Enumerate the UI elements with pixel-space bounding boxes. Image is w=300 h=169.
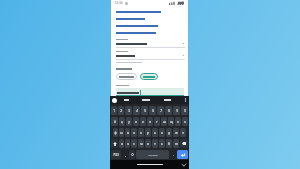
staticText: ч bbox=[127, 142, 129, 146]
button[interactable]: ш bbox=[161, 117, 167, 126]
staticText: и bbox=[147, 142, 149, 146]
button[interactable]: ю bbox=[173, 139, 179, 148]
button[interactable]: р bbox=[145, 128, 151, 137]
staticText: у bbox=[128, 120, 130, 124]
button[interactable] bbox=[111, 22, 188, 29]
button[interactable] bbox=[123, 97, 129, 103]
button[interactable]: 9 bbox=[173, 106, 180, 115]
button[interactable]: э bbox=[180, 128, 186, 137]
staticText: ы bbox=[120, 131, 123, 135]
button[interactable]: с bbox=[131, 139, 137, 148]
staticText: 2 bbox=[120, 109, 122, 113]
staticText: 8 bbox=[168, 109, 170, 113]
button[interactable] bbox=[140, 73, 158, 80]
button[interactable]: ь bbox=[159, 139, 165, 148]
staticText: л bbox=[161, 131, 163, 135]
staticText: д bbox=[168, 131, 170, 135]
staticText: б bbox=[168, 142, 170, 146]
staticText: ь bbox=[161, 142, 163, 146]
button[interactable]: п bbox=[138, 128, 144, 137]
button[interactable]: 2 bbox=[118, 106, 124, 115]
button[interactable]: More options bbox=[184, 98, 187, 102]
button[interactable]: Русский bbox=[136, 150, 169, 159]
button[interactable]: й bbox=[111, 117, 118, 126]
staticText: м bbox=[140, 142, 143, 146]
staticText: п bbox=[140, 131, 142, 135]
button[interactable]: 4 bbox=[133, 106, 140, 115]
staticText: 12:34 bbox=[114, 1, 123, 5]
staticText: , bbox=[125, 153, 126, 157]
staticText: 5 bbox=[144, 109, 146, 113]
button[interactable] bbox=[111, 8, 188, 15]
button[interactable] bbox=[111, 15, 188, 22]
button[interactable]: л bbox=[159, 128, 165, 137]
button[interactable]: х bbox=[182, 117, 188, 126]
button[interactable] bbox=[163, 97, 172, 103]
button[interactable]: 0 bbox=[181, 106, 188, 115]
button[interactable]: 6 bbox=[149, 106, 156, 115]
button[interactable]: а bbox=[131, 128, 137, 137]
staticText: ?123 bbox=[113, 153, 119, 157]
button[interactable]: щ bbox=[168, 117, 174, 126]
button[interactable]: Comma bbox=[122, 150, 128, 159]
staticText: х bbox=[184, 120, 186, 124]
button[interactable]: г bbox=[154, 117, 160, 126]
button[interactable] bbox=[111, 51, 188, 60]
staticText: с bbox=[133, 142, 135, 146]
button[interactable]: н bbox=[147, 117, 153, 126]
button[interactable]: Assistant bbox=[112, 98, 117, 103]
button[interactable] bbox=[116, 88, 184, 96]
staticText: о bbox=[154, 131, 156, 135]
button[interactable]: 7 bbox=[157, 106, 164, 115]
staticText: г bbox=[156, 120, 158, 124]
staticText: . bbox=[173, 153, 174, 157]
staticText: я bbox=[121, 142, 123, 146]
button[interactable]: 8 bbox=[165, 106, 172, 115]
staticText: ц bbox=[121, 120, 123, 124]
button[interactable] bbox=[111, 39, 188, 48]
staticText: ж bbox=[175, 131, 178, 135]
button[interactable] bbox=[111, 29, 188, 36]
staticText: к bbox=[135, 120, 137, 124]
staticText: й bbox=[114, 120, 116, 124]
button[interactable]: 5 bbox=[141, 106, 148, 115]
staticText: е bbox=[142, 120, 144, 124]
button[interactable]: к bbox=[133, 117, 139, 126]
button[interactable]: ?123 bbox=[111, 150, 121, 159]
button[interactable]: в bbox=[125, 128, 130, 137]
staticText: 1 bbox=[113, 109, 115, 113]
button[interactable]: ц bbox=[119, 117, 125, 126]
staticText: э bbox=[182, 131, 184, 135]
button[interactable]: е bbox=[140, 117, 146, 126]
staticText: ф bbox=[114, 131, 117, 135]
staticText: 7 bbox=[160, 109, 162, 113]
button[interactable]: и bbox=[145, 139, 151, 148]
button[interactable]: д bbox=[166, 128, 172, 137]
button[interactable]: ы bbox=[119, 128, 124, 137]
staticText: ш bbox=[163, 120, 166, 124]
button[interactable]: я bbox=[119, 139, 124, 148]
button[interactable]: Emoji bbox=[129, 150, 135, 159]
button[interactable] bbox=[116, 73, 137, 80]
button[interactable]: ж bbox=[173, 128, 179, 137]
button[interactable]: м bbox=[138, 139, 144, 148]
button[interactable] bbox=[141, 97, 151, 103]
button[interactable]: Shift bbox=[111, 139, 118, 148]
staticText: 3 bbox=[128, 109, 130, 113]
button[interactable]: з bbox=[175, 117, 181, 126]
button[interactable]: б bbox=[166, 139, 172, 148]
staticText: т bbox=[154, 142, 156, 146]
staticText: а bbox=[133, 131, 135, 135]
button[interactable]: о bbox=[152, 128, 158, 137]
staticText: щ bbox=[170, 120, 173, 124]
button[interactable]: Period bbox=[170, 150, 176, 159]
button[interactable]: 3 bbox=[125, 106, 132, 115]
button[interactable]: 1 bbox=[111, 106, 117, 115]
staticText: н bbox=[149, 120, 151, 124]
button[interactable]: Enter bbox=[177, 150, 188, 159]
button[interactable]: ч bbox=[125, 139, 130, 148]
button[interactable]: у bbox=[126, 117, 132, 126]
button[interactable]: т bbox=[152, 139, 158, 148]
button[interactable]: Backspace bbox=[180, 139, 188, 148]
button[interactable]: ф bbox=[113, 128, 118, 137]
